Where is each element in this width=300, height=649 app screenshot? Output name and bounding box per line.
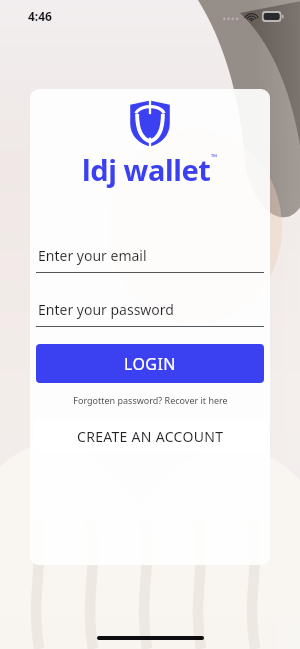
staticText: LOGIN	[124, 353, 176, 375]
button[interactable]: Enter your password	[36, 300, 264, 327]
staticText: Enter your email	[38, 246, 147, 265]
staticText: Forgotten password? Recover it here	[73, 394, 228, 406]
button[interactable]: Forgotten password? Recover it here	[36, 394, 264, 406]
staticText: Enter your password	[38, 300, 174, 319]
staticText: 4:46	[28, 8, 52, 24]
staticText: ™	[211, 151, 218, 162]
staticText: CREATE AN ACCOUNT	[77, 427, 224, 446]
button[interactable]: CREATE AN ACCOUNT	[33, 419, 267, 453]
button[interactable]: Enter your email	[36, 246, 264, 273]
button[interactable]: LOGIN	[36, 344, 264, 383]
staticText: ldj wallet	[82, 150, 211, 189]
